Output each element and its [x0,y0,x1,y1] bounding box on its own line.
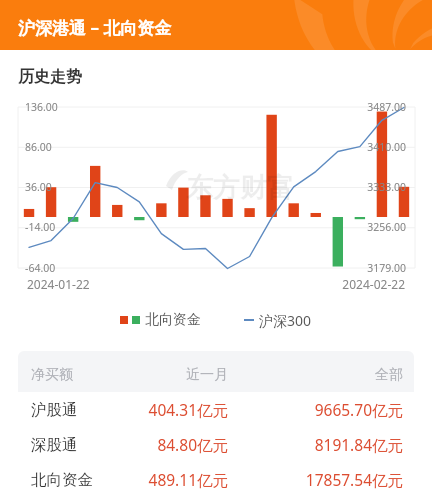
staticText: 9665.70亿元 [266,399,403,420]
staticText: 36.00 [25,180,52,194]
staticText: 北向资金 [31,470,93,490]
staticText: 历史走势 [18,67,82,87]
staticText: 东方财富 [186,171,294,205]
staticText: 北向资金 [145,311,201,329]
staticText: 86.00 [25,140,52,154]
button[interactable]: 沪深港通 – 北向资金 [0,0,432,50]
button[interactable]: 净买额 [18,357,414,392]
staticText: 全部 [266,366,403,384]
staticText: 3256.00 [345,220,406,234]
staticText: 3333.00 [345,180,406,194]
staticText: 沪深300 [259,311,312,330]
button[interactable]: 沪股通 [18,392,414,427]
staticText: 136.00 [25,100,58,114]
staticText: 2024-01-22 [27,276,90,292]
staticText: 84.80亿元 [118,434,228,455]
staticText: 净买额 [31,366,73,384]
staticText: 沪深港通 – 北向资金 [18,16,172,39]
staticText: 404.31亿元 [118,399,228,420]
staticText: 3487.00 [345,100,406,114]
staticText: 3179.00 [345,261,406,275]
staticText: 489.11亿元 [118,469,228,490]
button[interactable]: 北向资金 [18,462,414,497]
staticText: -14.00 [25,220,56,234]
staticText: 2024-02-22 [336,276,405,292]
staticText: 17857.54亿元 [266,469,403,490]
staticText: 近一月 [118,366,228,384]
staticText: 沪股通 [31,400,78,420]
button[interactable]: 深股通 [18,427,414,462]
staticText: 8191.84亿元 [266,434,403,455]
staticText: -64.00 [25,261,56,275]
staticText: 3410.00 [345,140,406,154]
staticText: 深股通 [31,435,78,455]
